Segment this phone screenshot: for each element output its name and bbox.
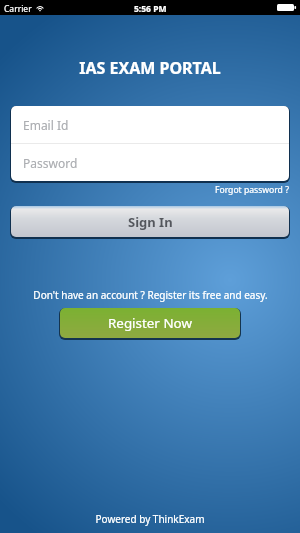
- staticText: Password: [23, 155, 78, 171]
- button[interactable]: Email Id: [11, 106, 289, 143]
- button[interactable]: Register Now: [60, 308, 240, 338]
- staticText: IAS EXAM PORTAL: [79, 57, 221, 79]
- staticText: Forgot password ?: [215, 184, 289, 196]
- staticText: 5:56 PM: [134, 3, 167, 15]
- staticText: Sign In: [128, 213, 173, 231]
- button[interactable]: Password: [11, 144, 289, 181]
- button[interactable]: Sign In: [11, 206, 289, 237]
- staticText: Powered by ThinkExam: [95, 512, 205, 526]
- staticText: Don't have an account ? Register its fre…: [33, 288, 268, 302]
- staticText: Register Now: [108, 314, 192, 332]
- staticText: Carrier: [4, 3, 32, 15]
- staticText: Email Id: [23, 117, 69, 133]
- button[interactable]: Forgot password ?: [215, 184, 300, 196]
